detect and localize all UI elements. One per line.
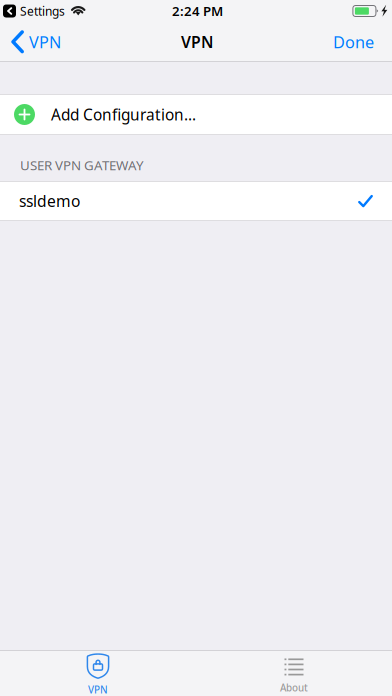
button[interactable]: VPN [0,650,196,696]
button[interactable]: Done [333,25,392,59]
staticText: Done [333,31,374,53]
staticText: VPN [181,31,213,53]
staticText: VPN [88,683,108,696]
staticText: About [280,681,308,694]
staticText: Add Configuration... [51,104,196,125]
staticText: 2:24 PM [172,2,223,20]
button[interactable]: ssldemo [0,181,392,221]
staticText: ssldemo [19,190,80,212]
button[interactable]: VPN [0,25,61,59]
staticText: VPN [29,31,61,53]
staticText: Settings [20,3,65,19]
staticText: USER VPN GATEWAY [20,156,144,174]
button[interactable]: About [196,650,392,696]
button[interactable]: Add Configuration... [0,94,392,135]
